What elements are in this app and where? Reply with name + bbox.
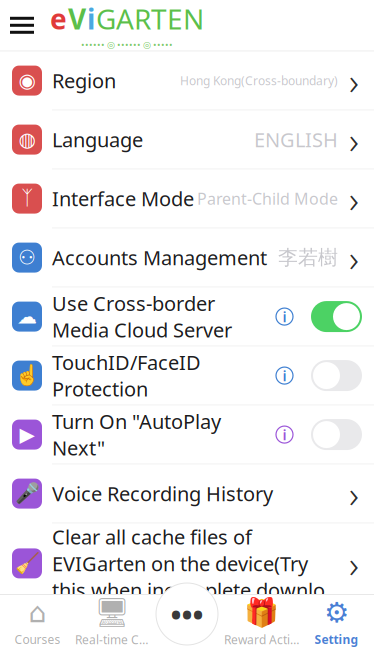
staticText: › (349, 233, 359, 282)
staticText: › (349, 56, 359, 105)
staticText: Parent-Child Mode (197, 188, 338, 209)
staticText: Language (52, 126, 143, 153)
staticText: ◉ (18, 69, 35, 92)
staticText: TouchID/FaceID Protection (52, 349, 201, 402)
button[interactable]: 🧹 (0, 524, 374, 603)
staticText: ▣ (17, 622, 36, 645)
button[interactable]: ☝ (0, 347, 374, 405)
button[interactable]: ◍ (0, 111, 374, 169)
staticText: Courses (14, 631, 60, 647)
staticText: ENGLISH (254, 126, 338, 153)
staticText: Interface Mode (52, 185, 194, 212)
staticText: › (349, 539, 359, 588)
button[interactable]: ⌂ (0, 594, 75, 650)
staticText: 🖥 (94, 596, 130, 628)
staticText: ᛉ (21, 189, 33, 208)
button[interactable]: 🖥 (75, 594, 150, 650)
button[interactable]: ◉ (0, 52, 374, 110)
staticText: Voice Recording History (52, 480, 273, 507)
staticText: 🎁 (244, 596, 279, 628)
button[interactable]: ⚇ (0, 229, 374, 287)
staticText: V (68, 0, 86, 37)
staticText: Real-time Classes (75, 631, 150, 647)
staticText: 李若樹 (278, 245, 338, 270)
staticText: ⚇ (18, 246, 36, 269)
staticText: › (349, 174, 359, 223)
staticText: Clear all cache files of EVIGarten on th… (52, 524, 346, 603)
staticText: Message Setting (52, 620, 205, 647)
button[interactable]: ▶ (0, 406, 374, 464)
staticText: ⚙ (324, 597, 349, 628)
staticText: ◍ (18, 128, 35, 151)
staticText: GARTEN (96, 0, 204, 37)
staticText: ⌂ (28, 597, 46, 628)
staticText: › (349, 608, 359, 650)
button[interactable]: 🎁 (224, 594, 299, 650)
staticText: Turn On "AutoPlay Next" (52, 408, 221, 461)
staticText: Setting (314, 631, 358, 647)
staticText: Reward Activities (224, 631, 299, 647)
staticText: Region (52, 67, 116, 94)
staticText: i (87, 0, 95, 37)
button[interactable]: Menu (0, 9, 44, 42)
staticText: i (282, 307, 286, 326)
staticText: i (282, 366, 286, 385)
staticText: i (282, 425, 286, 444)
button[interactable]: ☁ (0, 288, 374, 346)
staticText: ▶ (19, 423, 34, 446)
staticText: 🧹 (14, 552, 39, 575)
staticText: e (50, 0, 67, 37)
staticText: Accounts Management (52, 244, 267, 271)
staticText: Use Cross-border Media Cloud Server (52, 290, 232, 343)
button[interactable]: ᛉ (0, 170, 374, 228)
staticText: Hong Kong(Cross-boundary) (180, 73, 338, 88)
staticText: 🎤 (14, 482, 39, 505)
staticText: › (349, 469, 359, 518)
staticText: › (349, 115, 359, 164)
button[interactable]: More (156, 583, 218, 645)
staticText: ••• (170, 594, 203, 633)
staticText: •••••• ◎ •••••• ◎ ••••• (81, 38, 173, 51)
button[interactable]: ▣ (0, 604, 374, 650)
button[interactable]: ⚙ (299, 594, 374, 650)
button[interactable]: 🎤 (0, 465, 374, 523)
staticText: ☁ (17, 305, 37, 328)
staticText: ☝ (14, 364, 39, 387)
